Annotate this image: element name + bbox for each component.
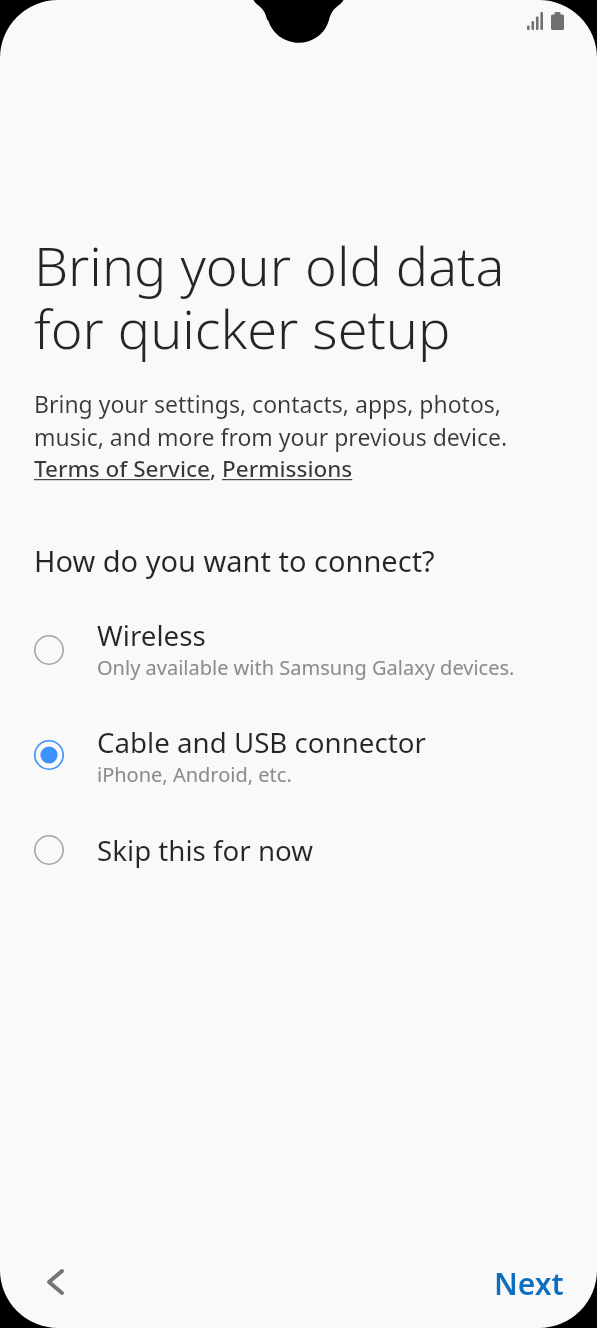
staticText: Bring your settings, contacts, apps, pho… [34, 388, 508, 453]
button[interactable]: Terms of Service [34, 453, 210, 484]
staticText: , [210, 453, 222, 484]
staticText: Cable and USB connector [97, 723, 426, 761]
staticText: Skip this for now [97, 831, 314, 869]
button[interactable]: Wireless [0, 605, 597, 691]
staticText: Wireless [97, 616, 206, 654]
staticText: How do you want to connect? [34, 541, 435, 580]
button[interactable]: Next [461, 1251, 597, 1316]
staticText: iPhone, Android, etc. [97, 761, 292, 788]
button[interactable]: Permissions [222, 453, 353, 484]
button[interactable]: Skip this for now [0, 807, 597, 893]
button[interactable]: Cable and USB connector [0, 712, 597, 798]
staticText: Next [494, 1263, 564, 1304]
staticText: Only available with Samsung Galaxy devic… [97, 654, 515, 681]
button[interactable]: Back [31, 1258, 79, 1306]
staticText: Bring your old data for quicker setup [34, 228, 505, 365]
